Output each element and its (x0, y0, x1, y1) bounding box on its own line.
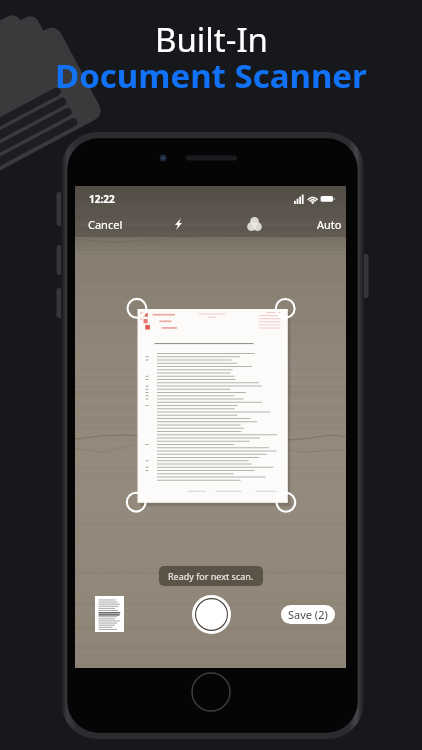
button[interactable]: Cancel (84, 214, 127, 235)
button[interactable]: Auto (313, 214, 346, 235)
button[interactable]: Save (2) (281, 605, 335, 624)
button[interactable]: Color filters (244, 214, 264, 234)
staticText: Auto (317, 217, 342, 232)
staticText: Ready for next scan. (168, 570, 254, 582)
staticText: Document Scanner (55, 53, 367, 98)
button[interactable]: Capture (192, 595, 231, 634)
button[interactable]: Last scan thumbnail (95, 596, 124, 632)
button[interactable]: Flash (169, 215, 187, 233)
staticText: Built-In (155, 17, 268, 62)
staticText: Cancel (88, 217, 123, 232)
button[interactable]: Ready for next scan. (159, 566, 263, 586)
staticText: 12:22 (89, 192, 115, 206)
staticText: Save (2) (288, 607, 328, 622)
